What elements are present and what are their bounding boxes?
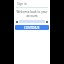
staticText: CONTINUE: [24, 26, 40, 30]
staticText: Welcome back to your account: [14, 10, 50, 18]
button[interactable]: CONTINUE: [15, 25, 49, 30]
staticText: Sign in: [17, 2, 47, 6]
